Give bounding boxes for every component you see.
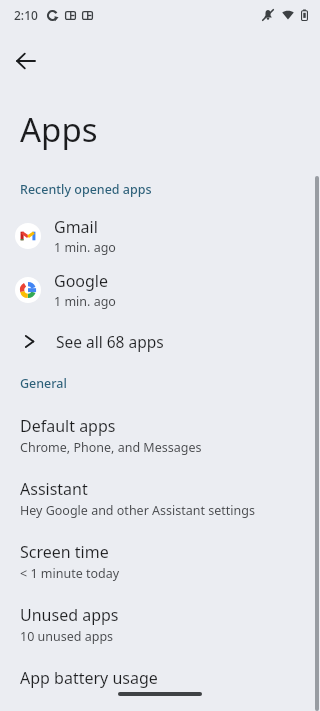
button[interactable]: Gmail [0,209,320,263]
staticText: See all 68 apps [56,331,164,352]
button[interactable]: Assistant [0,467,320,530]
staticText: App battery usage [20,667,158,689]
button[interactable]: Screen time [0,530,320,593]
staticText: Chrome, Phone, and Messages [20,439,202,456]
button[interactable]: See all 68 apps [0,317,320,365]
staticText: General [20,375,67,392]
staticText: Google [54,270,109,292]
staticText: Screen time [20,541,109,563]
button[interactable]: App battery usage [0,656,320,700]
staticText: Hey Google and other Assistant settings [20,502,255,519]
button[interactable]: Google [0,263,320,317]
button[interactable]: Unused apps [0,593,320,656]
staticText: Default apps [20,415,116,437]
staticText: Unused apps [20,604,119,626]
staticText: Recently opened apps [20,181,152,198]
staticText: < 1 minute today [20,565,120,582]
staticText: 10 unused apps [20,628,114,645]
staticText: Assistant [20,478,88,500]
button[interactable]: Default apps [0,404,320,467]
button[interactable]: Navigate up [8,43,44,79]
staticText: Gmail [54,216,98,238]
staticText: 1 min. ago [54,293,116,310]
staticText: Apps [20,107,98,152]
staticText: 2:10 [14,7,38,23]
staticText: 1 min. ago [54,239,116,256]
